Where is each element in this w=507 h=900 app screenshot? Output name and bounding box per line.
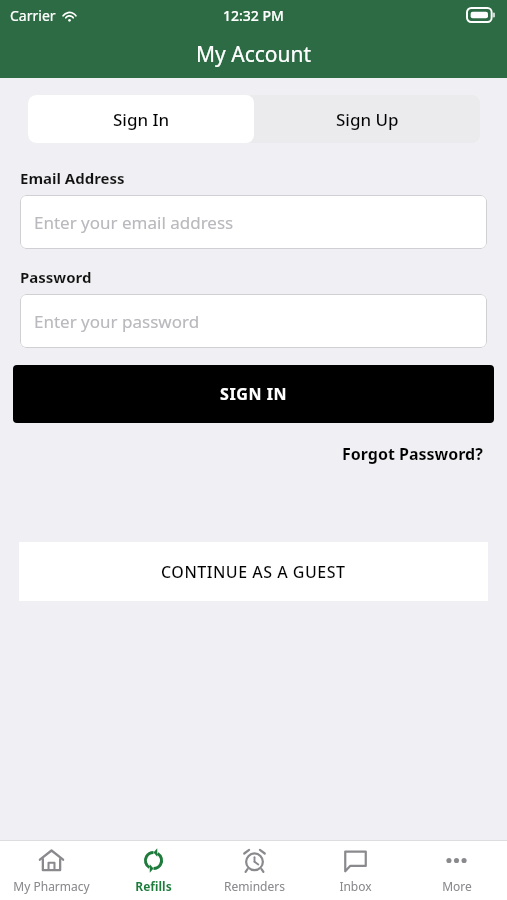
button[interactable]: CONTINUE AS A GUEST — [19, 542, 488, 601]
staticText: Enter your email address — [34, 211, 234, 234]
staticText: More — [442, 878, 472, 894]
staticText: Email Address — [20, 168, 125, 188]
button[interactable]: More — [406, 841, 507, 900]
staticText: My Account — [196, 40, 312, 69]
staticText: Sign In — [113, 108, 170, 131]
button[interactable]: Reminders — [204, 841, 305, 900]
button[interactable]: Sign In — [28, 95, 254, 143]
button[interactable]: Enter your password — [20, 294, 487, 348]
button[interactable]: My Pharmacy — [0, 841, 102, 900]
staticText: Enter your password — [34, 310, 200, 333]
button[interactable]: Enter your email address — [20, 195, 487, 249]
button[interactable]: Refills — [102, 841, 204, 900]
button[interactable]: SIGN IN — [13, 365, 494, 423]
staticText: Forgot Password? — [342, 443, 483, 465]
staticText: Sign Up — [336, 108, 399, 131]
button[interactable]: Forgot Password? — [338, 439, 487, 469]
staticText: CONTINUE AS A GUEST — [161, 561, 346, 583]
button[interactable]: Inbox — [305, 841, 406, 900]
staticText: Inbox — [339, 878, 372, 894]
staticText: 12:32 PM — [223, 6, 284, 25]
button[interactable]: Sign Up — [254, 95, 480, 143]
staticText: My Pharmacy — [13, 878, 90, 894]
staticText: Refills — [135, 878, 172, 894]
staticText: Carrier — [10, 6, 56, 25]
staticText: SIGN IN — [220, 383, 288, 405]
staticText: Password — [20, 267, 92, 287]
staticText: Reminders — [224, 878, 285, 894]
